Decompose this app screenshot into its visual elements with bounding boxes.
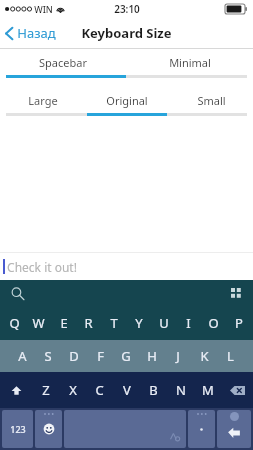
staticText: S: [44, 347, 52, 365]
button[interactable]: Emoji: [35, 410, 62, 448]
staticText: E: [60, 314, 68, 332]
button[interactable]: Y: [126, 306, 151, 340]
staticText: Minimal: [169, 55, 211, 70]
staticText: I: [186, 314, 191, 332]
button[interactable]: T: [101, 306, 126, 340]
button[interactable]: I: [176, 306, 201, 340]
button[interactable]: L: [217, 340, 243, 372]
button[interactable]: F: [87, 340, 113, 372]
button[interactable]: U: [151, 306, 176, 340]
staticText: F: [97, 347, 104, 365]
staticText: P: [235, 314, 243, 332]
staticText: A: [18, 347, 27, 365]
staticText: L: [227, 347, 234, 365]
button[interactable]: Q: [2, 306, 26, 340]
button[interactable]: R: [76, 306, 101, 340]
staticText: R: [84, 314, 93, 332]
staticText: Large: [28, 93, 58, 108]
staticText: O: [208, 314, 219, 332]
button[interactable]: Z: [32, 372, 59, 408]
button[interactable]: J: [165, 340, 191, 372]
staticText: B: [149, 381, 158, 399]
button[interactable]: Назад: [0, 20, 64, 46]
button[interactable]: G: [113, 340, 139, 372]
staticText: Назад: [17, 24, 56, 42]
staticText: G: [121, 347, 131, 365]
button[interactable]: Enter: [217, 410, 251, 448]
button[interactable]: A: [10, 340, 35, 372]
button[interactable]: V: [113, 372, 140, 408]
button[interactable]: Minimal: [126, 49, 253, 75]
staticText: U: [159, 314, 169, 332]
button[interactable]: Original: [85, 87, 169, 113]
button[interactable]: E: [51, 306, 76, 340]
staticText: H: [147, 347, 157, 365]
staticText: J: [176, 347, 180, 365]
button[interactable]: Small: [169, 87, 253, 113]
button[interactable]: P: [226, 306, 251, 340]
button[interactable]: Keyboard themes: [227, 284, 245, 302]
staticText: V: [123, 381, 131, 399]
button[interactable]: Spacebar: [0, 49, 126, 75]
button[interactable]: C: [86, 372, 113, 408]
button[interactable]: Shift: [0, 372, 32, 408]
staticText: M: [202, 381, 214, 399]
button[interactable]: W: [26, 306, 51, 340]
staticText: Small: [197, 93, 226, 108]
button[interactable]: O: [201, 306, 226, 340]
staticText: K: [200, 347, 209, 365]
staticText: WIN: [34, 3, 53, 15]
staticText: C: [95, 381, 104, 399]
button[interactable]: D: [61, 340, 87, 372]
staticText: Keyboard Size: [81, 24, 172, 42]
staticText: 123: [10, 423, 26, 435]
staticText: Q: [9, 314, 20, 332]
button[interactable]: B: [140, 372, 167, 408]
button[interactable]: Period: [188, 410, 215, 448]
button[interactable]: 123: [2, 410, 33, 448]
staticText: Original: [106, 93, 148, 108]
staticText: Check it out!: [7, 259, 77, 275]
staticText: Y: [135, 314, 143, 332]
staticText: W: [32, 314, 45, 332]
staticText: 23:10: [114, 2, 140, 16]
staticText: T: [110, 314, 118, 332]
button[interactable]: Check it out!: [0, 253, 253, 280]
staticText: Spacebar: [39, 55, 87, 70]
staticText: D: [69, 347, 79, 365]
button[interactable]: N: [167, 372, 194, 408]
button[interactable]: M: [194, 372, 221, 408]
staticText: X: [69, 381, 77, 399]
button[interactable]: Backspace: [221, 372, 253, 408]
button[interactable]: S: [35, 340, 61, 372]
button[interactable]: K: [191, 340, 217, 372]
button[interactable]: H: [139, 340, 165, 372]
staticText: N: [176, 381, 186, 399]
button[interactable]: Search: [8, 284, 26, 302]
button[interactable]: Large: [0, 87, 85, 113]
button[interactable]: X: [59, 372, 86, 408]
staticText: Z: [42, 381, 50, 399]
